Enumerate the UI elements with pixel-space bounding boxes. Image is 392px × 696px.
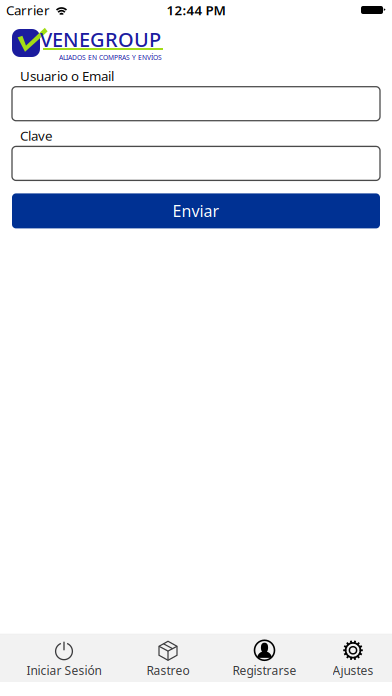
staticText: Rastreo <box>146 662 189 678</box>
staticText: Enviar <box>172 200 219 221</box>
button[interactable]: Iniciar Sesión <box>0 637 128 682</box>
staticText: 12:44 PM <box>166 1 225 19</box>
button[interactable]: Rastreo <box>128 637 208 682</box>
button[interactable]: Enviar <box>12 193 380 228</box>
staticText: Ajustes <box>332 662 373 678</box>
staticText: VENEGROUP <box>40 26 161 53</box>
staticText: Clave <box>20 127 53 144</box>
staticText: Iniciar Sesión <box>26 662 101 678</box>
staticText: Carrier <box>6 1 50 19</box>
staticText: Registrarse <box>232 662 296 678</box>
staticText: ALIADOS EN COMPRAS Y ENVÍOS <box>59 53 162 62</box>
button[interactable]: Ajustes <box>321 637 385 682</box>
button[interactable]: Registrarse <box>208 637 321 682</box>
staticText: Usuario o Email <box>20 67 114 85</box>
